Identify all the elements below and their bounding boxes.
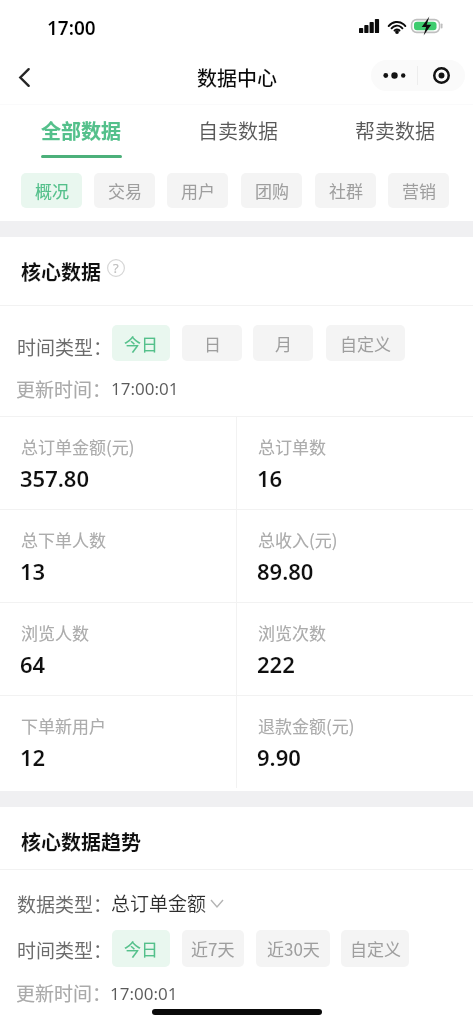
staticText: 核心数据趋势 (21, 827, 141, 856)
staticText: 概况 (35, 178, 69, 203)
staticText: 89.80 (257, 556, 314, 586)
staticText: 核心数据 (21, 257, 101, 286)
button[interactable]: 自定义 (326, 325, 405, 361)
button[interactable]: 全部数据 (21, 105, 141, 167)
button[interactable]: 营销 (388, 173, 449, 208)
button[interactable]: More options (371, 60, 417, 91)
staticText: 总订单数 (258, 434, 326, 459)
staticText: 16 (257, 463, 283, 493)
staticText: 下单新用户 (21, 713, 106, 738)
staticText: 帮卖数据 (355, 116, 435, 145)
staticText: 17:00:01 (110, 982, 178, 1005)
button[interactable]: 自定义 (341, 930, 409, 967)
button[interactable]: 总订单金额 (111, 889, 223, 917)
staticText: 总收入(元) (258, 527, 338, 552)
staticText: 近7天 (191, 936, 235, 961)
staticText: 自定义 (350, 936, 401, 961)
staticText: 更新时间： (16, 375, 112, 403)
staticText: 13 (20, 556, 46, 586)
button[interactable]: 月 (253, 325, 313, 361)
staticText: 自定义 (340, 331, 391, 356)
staticText: 64 (20, 649, 46, 679)
staticText: 总下单人数 (21, 527, 106, 552)
staticText: 用户 (181, 178, 215, 203)
staticText: 浏览次数 (258, 620, 326, 645)
button[interactable]: Back (0, 50, 48, 105)
staticText: 月 (275, 331, 292, 356)
staticText: 时间类型： (17, 936, 113, 964)
button[interactable]: 自卖数据 (178, 105, 298, 167)
staticText: 222 (257, 649, 295, 679)
staticText: 社群 (329, 178, 363, 203)
button[interactable]: 近7天 (182, 930, 244, 967)
staticText: 总订单金额(元) (21, 434, 135, 459)
staticText: 退款金额(元) (258, 713, 355, 738)
button[interactable]: 团购 (241, 173, 302, 208)
staticText: 12 (20, 742, 46, 772)
staticText: 17:00 (47, 15, 96, 41)
button[interactable]: 概况 (21, 173, 82, 208)
button[interactable]: Close mini program (418, 60, 465, 91)
staticText: 今日 (124, 936, 158, 961)
staticText: ? (113, 259, 119, 277)
staticText: 日 (204, 331, 221, 356)
button[interactable]: 用户 (167, 173, 228, 208)
staticText: 近30天 (267, 936, 320, 961)
staticText: 总订单金额 (111, 889, 207, 917)
button[interactable]: 日 (182, 325, 242, 361)
button[interactable]: 社群 (315, 173, 376, 208)
staticText: 357.80 (20, 463, 89, 493)
staticText: 团购 (255, 178, 289, 203)
staticText: 9.90 (257, 742, 301, 772)
staticText: 浏览人数 (21, 620, 89, 645)
staticText: 自卖数据 (198, 116, 278, 145)
button[interactable]: 交易 (94, 173, 155, 208)
button[interactable]: 帮卖数据 (335, 105, 455, 167)
staticText: 数据中心 (197, 63, 277, 92)
staticText: 营销 (402, 178, 436, 203)
button[interactable]: 今日 (112, 930, 170, 967)
staticText: 今日 (124, 331, 158, 356)
staticText: 交易 (108, 178, 142, 203)
button[interactable]: 近30天 (256, 930, 330, 967)
staticText: 更新时间： (16, 979, 112, 1007)
staticText: 数据类型： (17, 890, 113, 918)
staticText: 时间类型： (17, 333, 113, 361)
button[interactable]: 今日 (112, 325, 170, 361)
button[interactable]: Help (107, 259, 125, 277)
staticText: 全部数据 (41, 116, 121, 145)
staticText: 17:00:01 (111, 377, 179, 400)
